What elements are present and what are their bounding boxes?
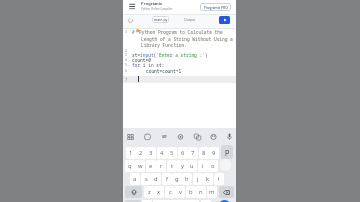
- button[interactable]: e: [146, 160, 156, 172]
- staticText: h: [185, 175, 189, 183]
- button[interactable]: d: [151, 173, 161, 185]
- staticText: r: [160, 162, 163, 170]
- staticText: k: [206, 175, 210, 183]
- staticText: j: [197, 175, 199, 183]
- staticText: y: [181, 162, 184, 170]
- button[interactable]: GIF: [159, 132, 169, 141]
- button[interactable]: s: [141, 173, 151, 185]
- button[interactable]: ?123: [125, 200, 141, 202]
- staticText: for i in st:: [132, 62, 165, 68]
- button[interactable]: b: [186, 186, 196, 198]
- button[interactable]: 8: [199, 147, 209, 159]
- button[interactable]: f: [162, 173, 172, 185]
- button[interactable]: main.py: [152, 16, 169, 23]
- button[interactable]: 1: [126, 147, 136, 159]
- button[interactable]: 3: [146, 147, 156, 159]
- staticText: 9: [212, 149, 216, 157]
- button[interactable]: q: [125, 160, 135, 172]
- button[interactable]: 5: [167, 147, 177, 159]
- button[interactable]: v: [175, 186, 185, 198]
- staticText: v: [179, 188, 182, 196]
- button[interactable]: r: [156, 160, 166, 172]
- button[interactable]: [219, 186, 234, 198]
- button[interactable]: 6: [178, 147, 188, 159]
- button[interactable]: t: [167, 160, 177, 172]
- staticText: f: [166, 175, 168, 183]
- staticText: 6: [125, 68, 128, 73]
- staticText: u: [190, 162, 194, 170]
- staticText: Library Function.: [141, 42, 187, 48]
- staticText: count=count+1: [146, 68, 182, 74]
- button[interactable]: [126, 132, 135, 141]
- button[interactable]: m: [207, 186, 217, 198]
- staticText: main.py: [154, 17, 168, 22]
- button[interactable]: x: [154, 186, 164, 198]
- button[interactable]: y: [177, 160, 187, 172]
- button[interactable]: a: [130, 173, 140, 185]
- button[interactable]: z: [144, 186, 154, 198]
- button[interactable]: [143, 132, 152, 141]
- staticText: count=0: [132, 57, 151, 63]
- button[interactable]: 9: [209, 147, 219, 159]
- button[interactable]: Output: [184, 17, 196, 22]
- button[interactable]: Programiz PRO: [200, 3, 231, 11]
- button[interactable]: 7: [188, 147, 198, 159]
- staticText: i: [202, 162, 204, 170]
- button[interactable]: ,: [142, 200, 152, 202]
- staticText: P: [141, 1, 144, 6]
- staticText: #: [132, 29, 135, 35]
- staticText: d: [154, 175, 158, 183]
- staticText: a: [133, 175, 137, 183]
- staticText: z: [148, 188, 151, 196]
- button[interactable]: u: [187, 160, 197, 172]
- staticText: 7: [125, 77, 128, 82]
- button[interactable]: [176, 132, 185, 141]
- staticText: 2: [125, 48, 128, 53]
- button[interactable]: [125, 186, 142, 198]
- staticText: 3: [149, 149, 153, 157]
- staticText: Programiz PRO: [204, 5, 228, 9]
- button[interactable]: 4: [157, 147, 167, 159]
- staticText: 2: [139, 149, 143, 157]
- staticText: c: [169, 188, 172, 196]
- button[interactable]: c: [165, 186, 175, 198]
- staticText: 4: [125, 57, 128, 62]
- button[interactable]: w: [135, 160, 145, 172]
- button[interactable]: j: [193, 173, 203, 185]
- staticText: Length of a String Without Using a: [141, 36, 233, 42]
- staticText: s: [145, 175, 148, 183]
- button[interactable]: 2: [136, 147, 146, 159]
- staticText: n: [199, 188, 203, 196]
- staticText: 1: [129, 149, 133, 157]
- button[interactable]: [218, 200, 231, 202]
- staticText: m: [209, 188, 215, 196]
- staticText: g: [175, 175, 179, 183]
- staticText: Python Online Compiler: [141, 7, 173, 11]
- staticText: rogramiz: [144, 1, 162, 6]
- button[interactable]: i: [198, 160, 208, 172]
- staticText: t: [171, 162, 174, 170]
- button[interactable]: [209, 132, 218, 141]
- staticText: x: [157, 188, 161, 196]
- button[interactable]: [193, 132, 202, 141]
- staticText: w: [138, 162, 143, 170]
- button[interactable]: .: [201, 200, 211, 202]
- button[interactable]: k: [203, 173, 213, 185]
- staticText: st=input('Enter a string :'): [132, 52, 208, 58]
- staticText: 5: [170, 149, 174, 157]
- button[interactable]: [225, 132, 234, 141]
- button[interactable]: g: [172, 173, 182, 185]
- button[interactable]: n: [196, 186, 206, 198]
- staticText: 7: [191, 149, 195, 157]
- button[interactable]: [128, 2, 137, 11]
- staticText: b: [189, 188, 193, 196]
- staticText: l: [218, 175, 220, 183]
- button[interactable]: l: [214, 173, 224, 185]
- button[interactable]: [219, 16, 230, 24]
- staticText: 3: [125, 52, 128, 57]
- staticText: Python Program to Calculate the: [139, 29, 223, 35]
- button[interactable]: [128, 18, 133, 23]
- button[interactable]: o: [208, 160, 218, 172]
- button[interactable]: h: [182, 173, 192, 185]
